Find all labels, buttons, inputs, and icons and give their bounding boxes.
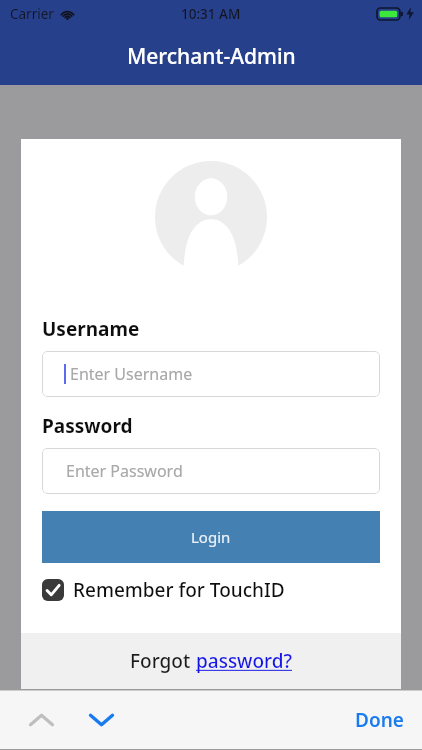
button[interactable]: Forgot — [122, 644, 300, 678]
button[interactable]: Next field — [82, 701, 120, 739]
button[interactable]: Done — [337, 697, 422, 743]
staticText: Username — [42, 316, 140, 342]
staticText: Password — [42, 413, 133, 439]
button[interactable]: Remember for TouchID — [42, 575, 285, 605]
staticText: Enter Password — [66, 460, 183, 482]
staticText: Carrier — [10, 5, 54, 23]
button[interactable]: Enter Username — [42, 351, 380, 397]
staticText: Merchant-Admin — [127, 42, 296, 71]
button[interactable]: Previous field — [22, 701, 60, 739]
button[interactable]: Login — [42, 511, 380, 563]
staticText: Forgot — [130, 648, 196, 674]
staticText: Done — [355, 707, 404, 733]
staticText: Remember for TouchID — [73, 577, 285, 603]
button[interactable]: Enter Password — [42, 448, 380, 494]
staticText: password? — [196, 648, 292, 674]
staticText: 10:31 AM — [181, 5, 241, 23]
staticText: Enter Username — [70, 363, 193, 385]
staticText: Login — [191, 527, 231, 547]
